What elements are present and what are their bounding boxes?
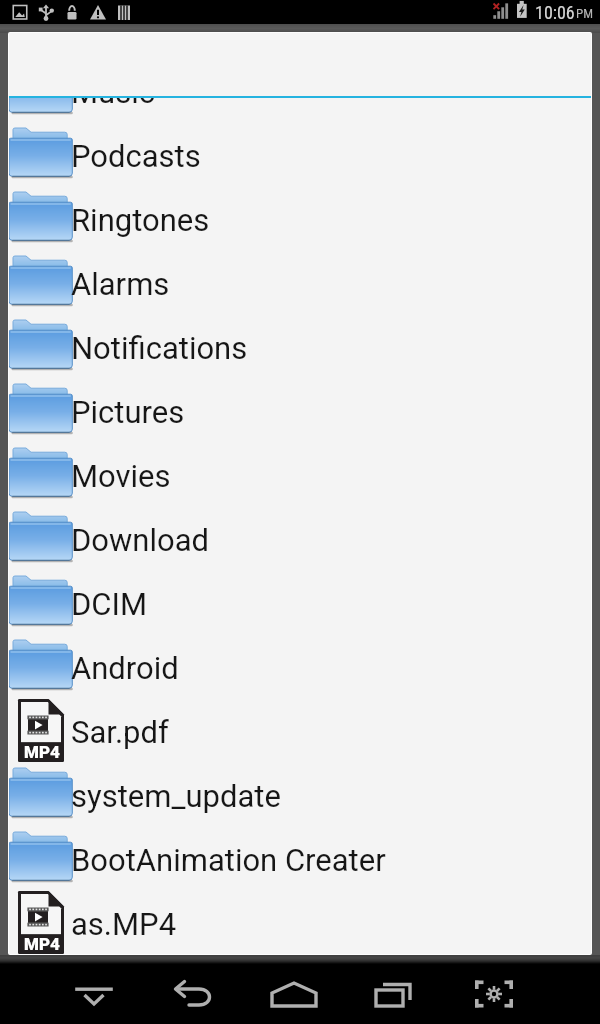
staticText: BootAnimation Creater: [71, 842, 386, 878]
button[interactable]: Music: [9, 61, 591, 125]
button[interactable]: Home: [244, 964, 344, 1024]
staticText: Pictures: [71, 394, 185, 430]
staticText: MP4: [24, 934, 60, 954]
button[interactable]: Pictures: [9, 381, 591, 445]
button[interactable]: Ringtones: [9, 189, 591, 253]
button[interactable]: system_update: [9, 765, 591, 829]
button[interactable]: Back: [144, 964, 244, 1024]
button[interactable]: Recents: [344, 964, 444, 1024]
button[interactable]: MP4: [9, 893, 591, 954]
staticText: Notifications: [71, 330, 248, 366]
button[interactable]: Screenshot: [444, 964, 544, 1024]
staticText: as.MP4: [71, 906, 177, 942]
staticText: DCIM: [71, 586, 148, 622]
staticText: Android: [71, 650, 179, 686]
button[interactable]: Notifications: [9, 317, 591, 381]
staticText: Music: [71, 74, 155, 110]
button[interactable]: MP4: [9, 701, 591, 765]
staticText: MP4: [24, 742, 60, 762]
button[interactable]: Download: [9, 509, 591, 573]
staticText: 10:06: [535, 2, 575, 23]
staticText: Sar.pdf: [71, 714, 169, 750]
staticText: Movies: [71, 458, 171, 494]
button[interactable]: BootAnimation Creater: [9, 829, 591, 893]
staticText: PM: [576, 6, 594, 21]
staticText: Alarms: [71, 266, 170, 302]
staticText: system_update: [71, 778, 281, 814]
staticText: Download: [71, 522, 210, 558]
button[interactable]: Alarms: [9, 253, 591, 317]
staticText: Ringtones: [71, 202, 210, 238]
button[interactable]: DCIM: [9, 573, 591, 637]
button[interactable]: Podcasts: [9, 125, 591, 189]
button[interactable]: Android: [9, 637, 591, 701]
button[interactable]: Hide keyboard: [44, 964, 144, 1024]
staticText: Podcasts: [71, 138, 201, 174]
button[interactable]: Movies: [9, 445, 591, 509]
